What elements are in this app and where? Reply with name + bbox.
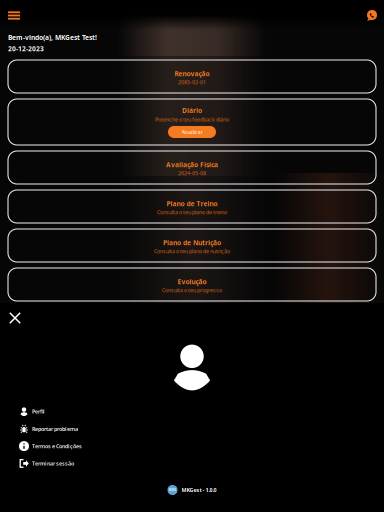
button[interactable]: Renovação <box>8 60 376 93</box>
staticText: Plano de Nutrição <box>163 238 221 247</box>
staticText: Plano de Treino <box>166 199 217 208</box>
staticText: Terminar sessão <box>32 460 74 467</box>
staticText: Renovação <box>174 69 209 78</box>
staticText: 2085-02-01 <box>178 79 206 86</box>
staticText: Consulta o teu progresso <box>162 287 222 294</box>
staticText: Evolução <box>177 277 206 286</box>
staticText: MKGest - 1.0.0 <box>181 486 216 494</box>
staticText: Bem-vindo(a), MKGest Test! <box>8 33 97 42</box>
staticText: Consulta o teu plano de nutrição <box>154 248 230 255</box>
button[interactable]: Diário <box>8 99 376 145</box>
button[interactable]: Terminar sessão <box>0 455 384 472</box>
button[interactable]: Termos e Condições <box>0 437 384 455</box>
button[interactable]: Evolução <box>8 268 376 301</box>
button[interactable]: Perfil <box>0 403 384 420</box>
staticText: Avaliação Física <box>166 160 218 169</box>
button[interactable]: Avaliação Física <box>8 151 376 184</box>
button[interactable]: Plano de Treino <box>8 190 376 223</box>
staticText: Consulta o teu plano de treino <box>157 209 227 216</box>
staticText: 2024-05-08 <box>178 170 206 177</box>
button[interactable]: Menu <box>1 5 27 25</box>
button[interactable]: Close <box>0 306 29 330</box>
staticText: Preenche o teu feedback diário <box>155 116 229 123</box>
staticText: Termos e Condições <box>32 443 82 450</box>
staticText: Perfil <box>32 408 45 415</box>
staticText: 20-12-2023 <box>8 44 44 53</box>
button[interactable]: WhatsApp <box>360 5 383 26</box>
staticText: Reportar problema <box>32 425 78 432</box>
button[interactable]: Plano de Nutrição <box>8 229 376 262</box>
staticText: MKG <box>169 488 176 492</box>
button[interactable]: Reportar problema <box>0 420 384 437</box>
staticText: Atualizar <box>181 128 202 135</box>
staticText: Diário <box>182 106 202 115</box>
